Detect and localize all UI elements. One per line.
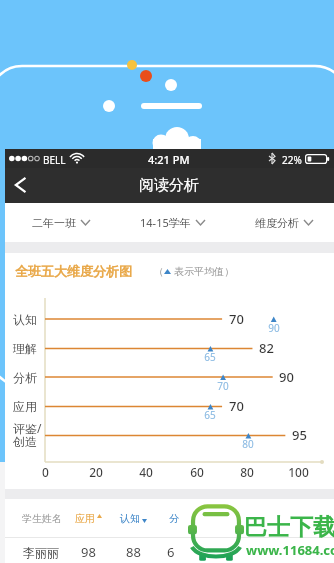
staticText: 14-15学年 bbox=[140, 215, 191, 230]
staticText: 88 bbox=[126, 543, 141, 561]
button[interactable]: 二年一班 bbox=[5, 203, 117, 242]
staticText: 98 bbox=[81, 543, 96, 561]
staticText: 60 bbox=[190, 464, 204, 480]
staticText: www.11684.com bbox=[246, 541, 334, 559]
button[interactable]: 认知 bbox=[116, 505, 150, 532]
staticText: 65 bbox=[204, 408, 216, 422]
staticText: 95 bbox=[292, 426, 307, 444]
staticText: 80 bbox=[240, 464, 254, 480]
staticText: 6 bbox=[167, 543, 175, 561]
staticText: 70 bbox=[229, 310, 244, 328]
button[interactable]: 分 bbox=[167, 505, 180, 532]
staticText: 90 bbox=[279, 368, 294, 386]
staticText: 认知 bbox=[120, 512, 140, 525]
staticText: 全班五大维度分析图 bbox=[15, 263, 132, 279]
staticText: 理解 bbox=[13, 341, 37, 356]
staticText: 表示平均值） bbox=[174, 265, 234, 278]
staticText: 4:21 PM bbox=[148, 152, 190, 167]
button[interactable]: 维度分析 bbox=[228, 203, 334, 242]
button[interactable]: 14-15学年 bbox=[117, 203, 228, 242]
staticText: 70 bbox=[229, 397, 244, 415]
button[interactable]: Back bbox=[4, 168, 36, 202]
staticText: 应用 bbox=[75, 512, 95, 525]
staticText: 分析 bbox=[13, 370, 37, 385]
staticText: 20 bbox=[89, 464, 103, 480]
staticText: 80 bbox=[242, 437, 254, 451]
staticText: 阅读分析 bbox=[139, 176, 199, 195]
staticText: 李丽丽 bbox=[23, 545, 59, 560]
staticText: 90 bbox=[268, 321, 280, 335]
staticText: 22% bbox=[282, 153, 302, 167]
staticText: 维度分析 bbox=[255, 216, 299, 230]
button[interactable]: 学生姓名 bbox=[17, 505, 66, 532]
button[interactable]: 应用 bbox=[71, 505, 105, 532]
staticText: 100 bbox=[288, 464, 309, 480]
staticText: BELL bbox=[43, 153, 66, 167]
staticText: 82 bbox=[259, 339, 274, 357]
staticText: 0 bbox=[42, 464, 49, 480]
staticText: 应用 bbox=[13, 399, 37, 414]
staticText: 学生姓名 bbox=[22, 512, 62, 525]
staticText: 分 bbox=[169, 512, 179, 525]
staticText: 40 bbox=[139, 464, 153, 480]
staticText: （ bbox=[154, 265, 164, 278]
staticText: 评鉴/ 创造 bbox=[13, 420, 42, 449]
staticText: 认知 bbox=[13, 312, 37, 327]
staticText: 二年一班 bbox=[32, 216, 76, 230]
staticText: 70 bbox=[217, 379, 229, 393]
staticText: 巴士下载 bbox=[244, 513, 334, 542]
staticText: 65 bbox=[204, 350, 216, 364]
